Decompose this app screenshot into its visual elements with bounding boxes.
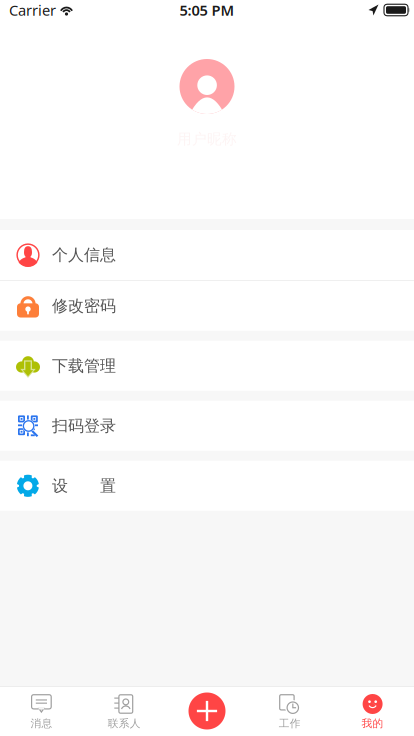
button[interactable]: 联系人 xyxy=(83,686,166,736)
staticText: Carrier xyxy=(9,0,56,20)
staticText: 个人信息 xyxy=(52,245,116,265)
staticText: 扫码登录 xyxy=(52,416,116,436)
button[interactable]: 工作 xyxy=(248,686,331,736)
button[interactable]: 新建 xyxy=(188,692,225,729)
staticText: 下载管理 xyxy=(52,356,116,376)
button[interactable]: 下载管理 xyxy=(0,341,414,391)
staticText: 用户昵称 xyxy=(177,130,237,148)
staticText: 消息 xyxy=(30,717,52,730)
staticText: 5:05 PM xyxy=(179,0,234,20)
button[interactable]: 设 置 xyxy=(0,461,414,511)
staticText: 工作 xyxy=(279,717,301,730)
staticText: 设 置 xyxy=(52,476,116,496)
button[interactable]: 修改密码 xyxy=(0,281,414,331)
button[interactable]: 个人信息 xyxy=(0,230,414,280)
button[interactable]: 扫码登录 xyxy=(0,401,414,451)
button[interactable]: 我的 xyxy=(331,686,414,736)
button[interactable]: 消息 xyxy=(0,686,83,736)
staticText: 联系人 xyxy=(108,717,141,730)
staticText: 我的 xyxy=(362,717,384,730)
staticText: 修改密码 xyxy=(52,296,116,316)
